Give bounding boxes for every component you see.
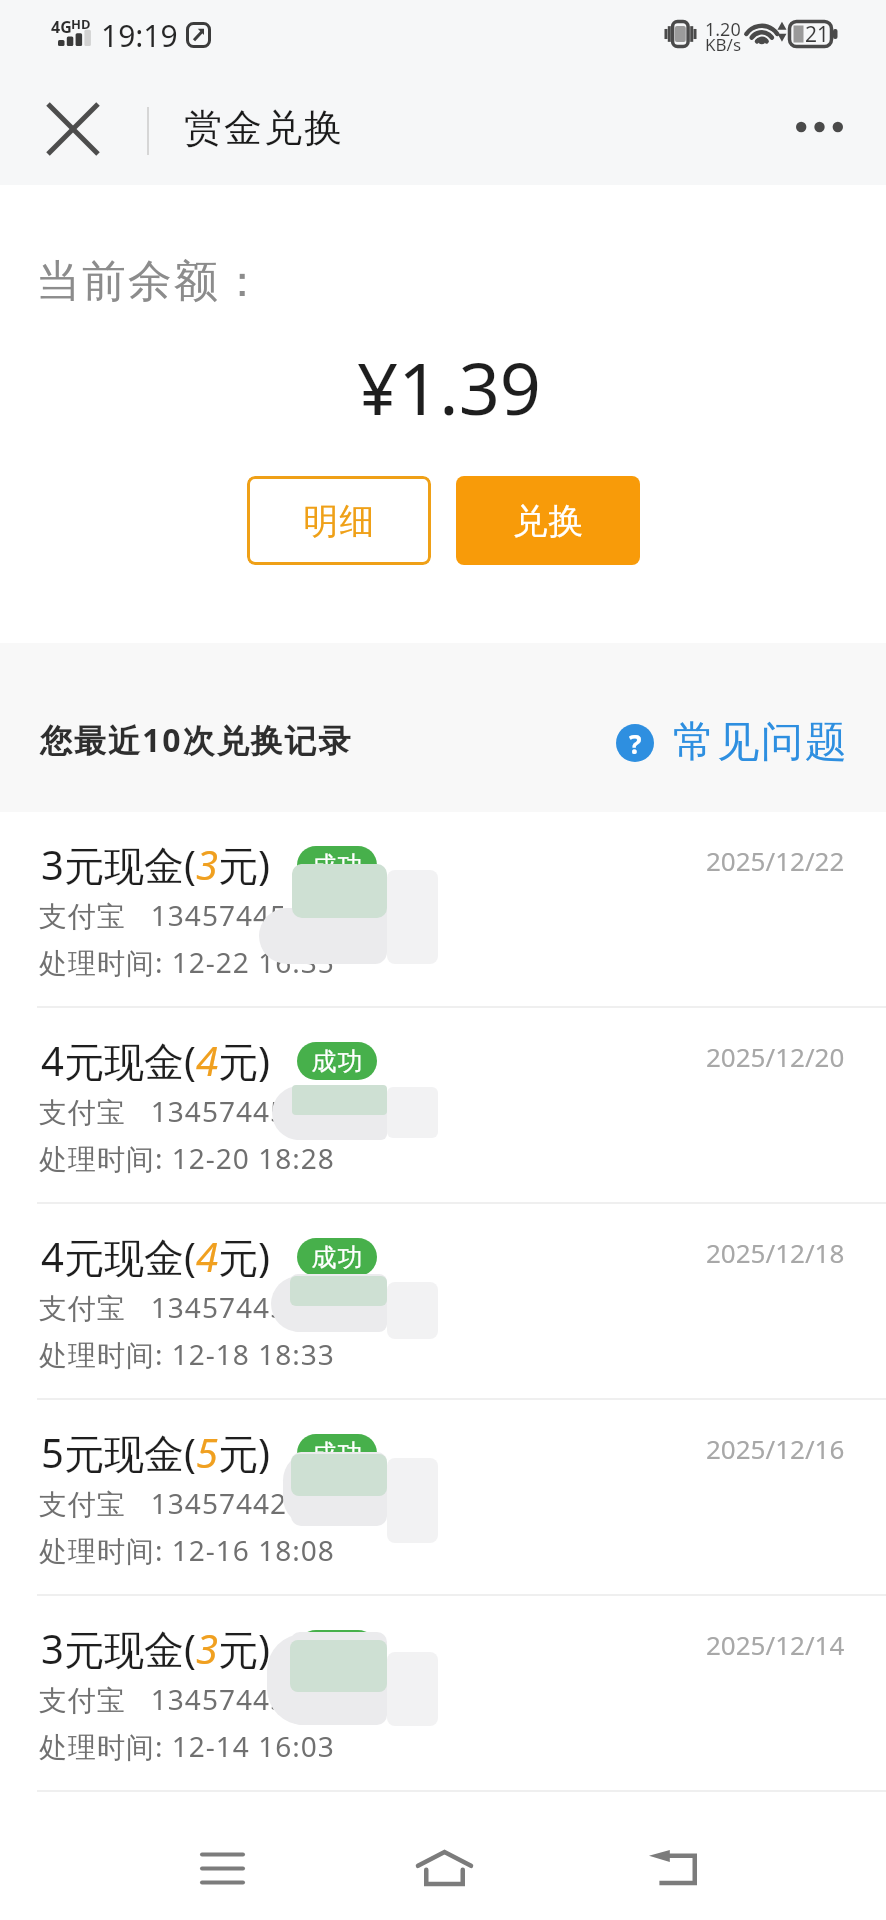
staticText: 2025/12/16 [706,1431,845,1466]
staticText: KB/s [705,33,742,56]
staticText: 支付宝 134574424 [39,1484,304,1522]
staticText: 成功 [311,1438,363,1469]
staticText: 支付宝 13457445 [39,896,287,934]
staticText: 处理时间: 12-20 18:28 [39,1139,335,1177]
button[interactable]: 3元现金(3元) [0,1596,886,1792]
staticText: 成功 [311,1242,363,1273]
staticText: 19:19 [101,15,178,56]
staticText: 2025/12/22 [706,843,845,878]
staticText: 处理时间: 12-14 16:03 [39,1727,335,1765]
staticText: ¥1.39 [357,338,542,436]
staticText: 当前余额： [35,254,265,309]
staticText: 2025/12/14 [706,1627,845,1662]
staticText: 4元现金(4元) [41,1033,270,1088]
staticText: 3元现金(3元) [41,1621,270,1676]
staticText: 赏金兑换 [183,104,343,152]
button[interactable]: ? [616,716,848,769]
staticText: 处理时间: 12-18 18:33 [39,1335,335,1373]
staticText: 兑换 [512,499,584,543]
staticText: 1.20 [705,17,741,42]
staticText: 常见问题 [672,716,848,769]
staticText: 处理时间: 12-16 18:08 [39,1531,335,1569]
button[interactable]: 4元现金(4元) [0,1008,886,1204]
button[interactable]: Close [26,84,120,178]
staticText: 成功 [311,1634,363,1665]
staticText: 2025/12/18 [706,1235,845,1270]
staticText: 成功 [311,1046,363,1077]
staticText: ? [629,726,642,761]
staticText: 4G [51,16,72,38]
button[interactable]: 兑换 [456,476,640,565]
staticText: 2025/12/20 [706,1039,845,1074]
staticText: 4元现金(4元) [41,1229,270,1284]
staticText: 处理时间: 12-22 16:35 [39,943,335,981]
button[interactable]: 5元现金(5元) [0,1400,886,1596]
staticText: 成功 [311,850,363,881]
staticText: 5元现金(5元) [41,1425,270,1480]
staticText: 支付宝 13457445 [39,1288,287,1326]
button[interactable]: Back [625,1818,725,1918]
staticText: 支付宝 13457445 [39,1680,287,1718]
staticText: 21 [805,20,830,48]
staticText: 明细 [303,499,375,543]
staticText: 您最近10次兑换记录 [40,718,353,762]
button[interactable]: 4元现金(4元) [0,1204,886,1400]
button[interactable]: 3元现金(3元) [0,812,886,1008]
button[interactable]: More options [772,84,866,178]
button[interactable]: Recent apps [172,1818,272,1918]
staticText: HD [71,15,91,33]
button[interactable]: 明细 [247,476,431,565]
button[interactable]: Home [394,1818,494,1918]
staticText: 支付宝 13457445 [39,1092,287,1130]
staticText: 3元现金(3元) [41,837,270,892]
